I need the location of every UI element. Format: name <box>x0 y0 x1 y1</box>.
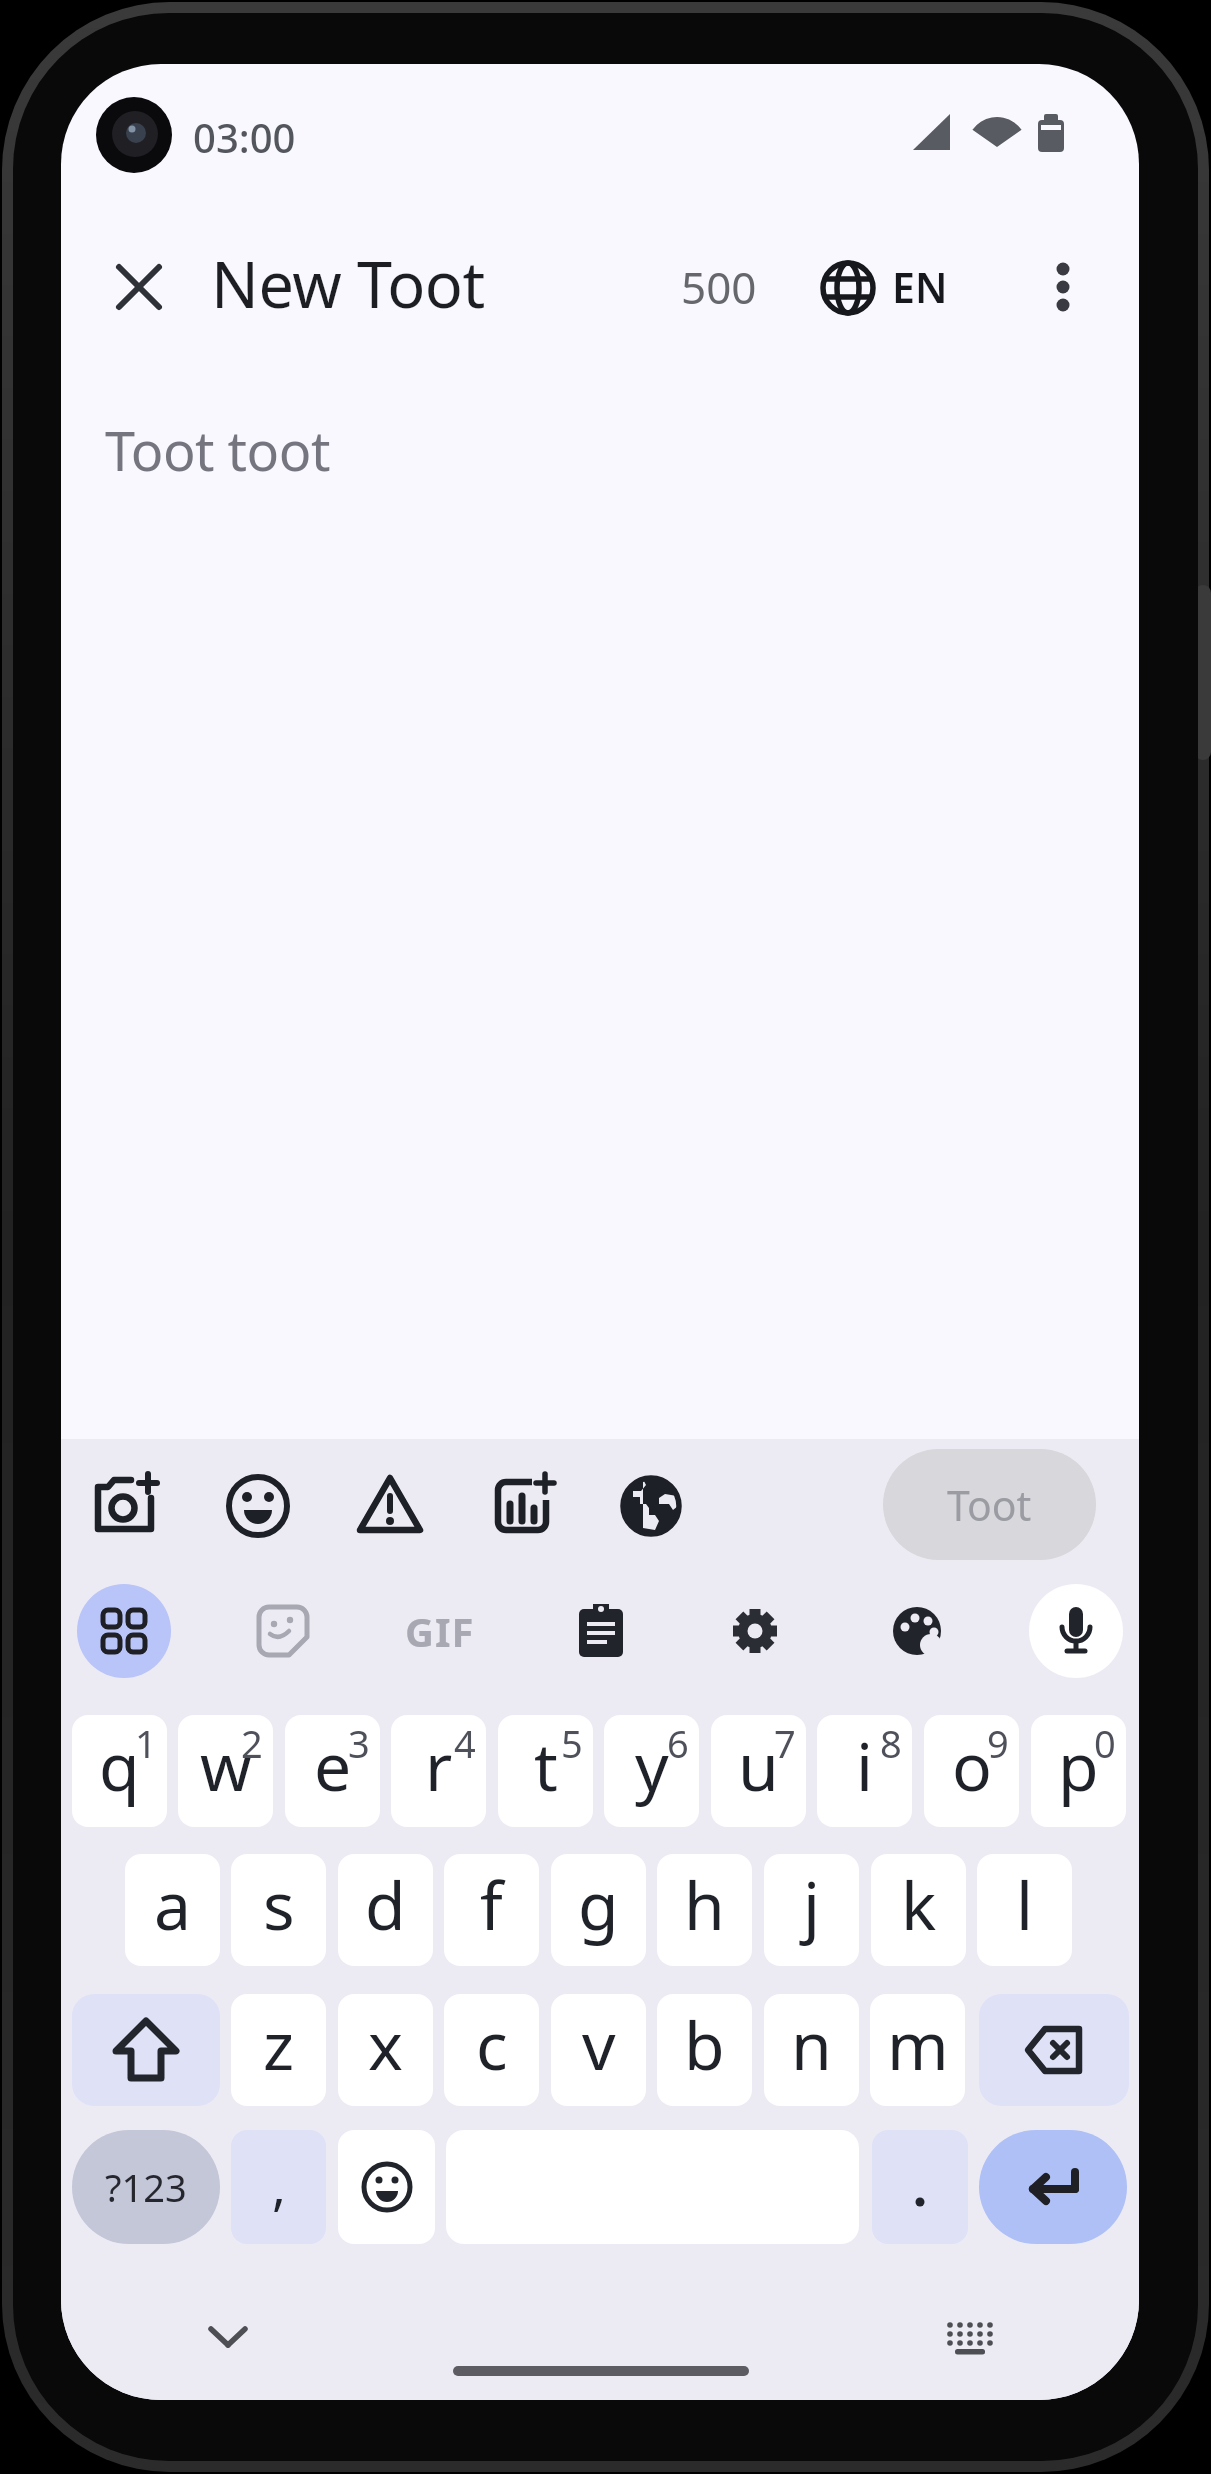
staticText: q <box>99 1720 140 1810</box>
button[interactable]: c <box>444 1994 539 2106</box>
staticText: d <box>365 1859 406 1949</box>
staticText: s <box>263 1859 295 1949</box>
button[interactable]: u <box>711 1715 806 1827</box>
staticText: 6 <box>667 1717 689 1769</box>
button[interactable] <box>208 1456 308 1556</box>
staticText: r <box>425 1720 453 1810</box>
button[interactable] <box>705 1581 805 1681</box>
button[interactable]: l <box>977 1854 1072 1966</box>
button[interactable]: s <box>231 1854 326 1966</box>
staticText: , <box>272 2149 286 2220</box>
button[interactable]: e <box>285 1715 380 1827</box>
button[interactable] <box>472 1456 572 1556</box>
staticText: y <box>635 1720 669 1810</box>
staticText: 7 <box>774 1717 796 1769</box>
button[interactable] <box>233 1581 333 1681</box>
button[interactable]: k <box>871 1854 966 1966</box>
staticText: 03:00 <box>193 110 296 160</box>
staticText: t <box>534 1720 558 1810</box>
staticText: z <box>263 1999 295 2089</box>
staticText: b <box>684 1999 725 2089</box>
button[interactable]: GIF <box>380 1594 500 1668</box>
staticText: h <box>684 1859 725 1949</box>
staticText: ?123 <box>105 2161 187 2213</box>
button[interactable]: Toot <box>883 1449 1096 1560</box>
staticText: a <box>154 1859 192 1949</box>
button[interactable] <box>1029 1584 1123 1678</box>
staticText: 4 <box>454 1717 476 1769</box>
button[interactable]: y <box>604 1715 699 1827</box>
staticText: j <box>803 1859 821 1949</box>
button[interactable] <box>178 2287 278 2387</box>
button[interactable] <box>979 1994 1129 2106</box>
staticText: l <box>1016 1859 1034 1949</box>
staticText: v <box>582 1999 616 2089</box>
staticText: c <box>476 1999 508 2089</box>
button[interactable]: q <box>72 1715 167 1827</box>
staticText: GIF <box>405 1604 475 1658</box>
staticText: w <box>200 1720 252 1810</box>
staticText: g <box>578 1859 619 1949</box>
staticText: 5 <box>561 1717 583 1769</box>
button[interactable] <box>77 1584 171 1678</box>
button[interactable]: b <box>657 1994 752 2106</box>
button[interactable]: m <box>870 1994 965 2106</box>
staticText: m <box>887 1999 949 2089</box>
staticText: k <box>901 1859 937 1949</box>
button[interactable] <box>338 2130 435 2244</box>
staticText: o <box>952 1720 992 1810</box>
staticText: Toot toot <box>105 413 330 487</box>
staticText: x <box>368 1999 403 2089</box>
button[interactable] <box>979 2130 1127 2244</box>
button[interactable]: n <box>764 1994 859 2106</box>
button[interactable]: a <box>125 1854 220 1966</box>
staticText: 1 <box>135 1717 157 1769</box>
button[interactable]: ?123 <box>72 2130 220 2244</box>
button[interactable] <box>920 2288 1020 2388</box>
button[interactable]: h <box>657 1854 752 1966</box>
staticText: e <box>314 1720 352 1810</box>
button[interactable] <box>867 1581 967 1681</box>
staticText: 8 <box>880 1717 902 1769</box>
staticText: u <box>738 1720 779 1810</box>
staticText: 9 <box>987 1717 1009 1769</box>
button[interactable] <box>801 237 981 337</box>
staticText: 3 <box>348 1717 370 1769</box>
button[interactable]: p <box>1031 1715 1126 1827</box>
button[interactable] <box>340 1456 440 1556</box>
button[interactable] <box>872 2130 968 2244</box>
button[interactable] <box>72 1994 220 2106</box>
staticText: p <box>1058 1720 1099 1810</box>
button[interactable] <box>89 237 189 337</box>
button[interactable]: z <box>231 1994 326 2106</box>
button[interactable]: i <box>817 1715 912 1827</box>
button[interactable] <box>1013 237 1113 337</box>
button[interactable]: w <box>178 1715 273 1827</box>
button[interactable]: j <box>764 1854 859 1966</box>
staticText: Toot <box>947 1477 1032 1533</box>
button[interactable]: v <box>551 1994 646 2106</box>
staticText: 500 <box>681 257 757 317</box>
button[interactable] <box>601 1456 701 1556</box>
staticText: f <box>480 1859 503 1949</box>
button[interactable]: , <box>231 2130 326 2244</box>
staticText: n <box>791 1999 832 2089</box>
button[interactable]: t <box>498 1715 593 1827</box>
button[interactable]: r <box>391 1715 486 1827</box>
button[interactable]: f <box>444 1854 539 1966</box>
button[interactable]: g <box>551 1854 646 1966</box>
button[interactable] <box>73 1456 173 1556</box>
button[interactable] <box>551 1581 651 1681</box>
staticText: 0 <box>1094 1717 1116 1769</box>
staticText: New Toot <box>211 241 485 317</box>
staticText: EN <box>892 259 948 315</box>
button[interactable]: d <box>338 1854 433 1966</box>
button[interactable]: x <box>338 1994 433 2106</box>
staticText: i <box>856 1720 874 1810</box>
staticText: 2 <box>241 1717 263 1769</box>
button[interactable]: o <box>924 1715 1019 1827</box>
